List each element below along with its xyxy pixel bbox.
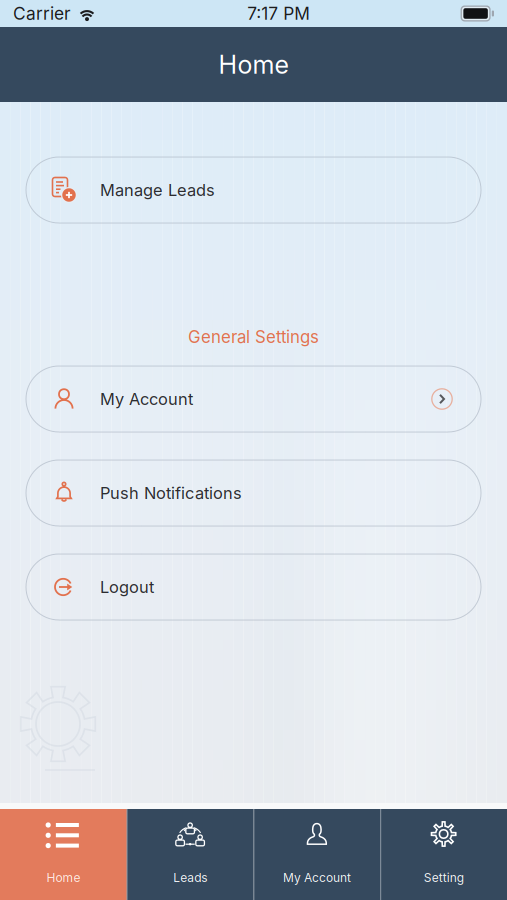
button[interactable]: Leads <box>127 809 254 900</box>
button[interactable]: Push Notifications <box>26 460 481 526</box>
staticText: 7:17 PM <box>247 3 310 24</box>
staticText: Manage Leads <box>100 180 215 200</box>
button[interactable]: Manage Leads <box>26 157 481 223</box>
button[interactable]: Home <box>0 809 127 900</box>
staticText: Leads <box>173 870 207 885</box>
staticText: Home <box>218 49 288 80</box>
staticText: Logout <box>100 577 154 597</box>
staticText: My Account <box>100 389 193 409</box>
staticText: General Settings <box>188 327 319 347</box>
button[interactable]: Logout <box>26 554 481 620</box>
staticText: Push Notifications <box>100 483 242 503</box>
staticText: Setting <box>424 870 464 885</box>
button[interactable]: My Account <box>253 809 380 900</box>
staticText: Home <box>46 870 80 885</box>
staticText: Carrier <box>13 3 71 24</box>
staticText: My Account <box>283 870 351 885</box>
button[interactable]: My Account <box>26 366 481 432</box>
button[interactable]: Setting <box>380 809 507 900</box>
